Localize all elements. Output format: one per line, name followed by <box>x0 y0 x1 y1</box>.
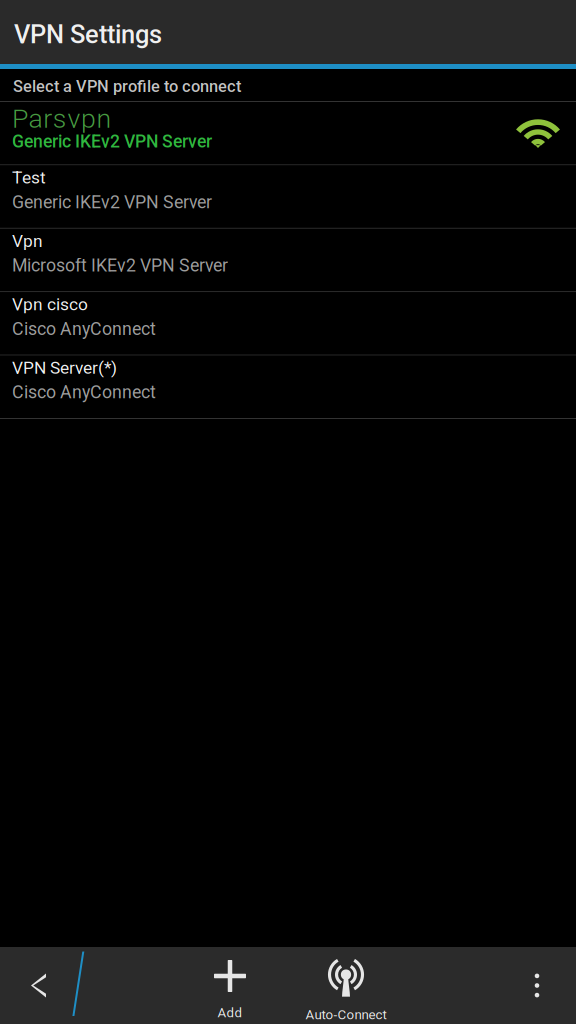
staticText: Add <box>217 1005 242 1021</box>
staticText: Auto-Connect <box>305 1007 386 1023</box>
staticText: Generic IKEv2 VPN Server <box>12 131 212 152</box>
staticText: VPN Settings <box>14 20 162 49</box>
staticText: Select a VPN profile to connect <box>13 77 241 96</box>
staticText: VPN Server(*) <box>12 358 117 378</box>
button[interactable]: VPN Server(*) <box>0 356 576 418</box>
button[interactable]: Vpn <box>0 229 576 291</box>
staticText: Cisco AnyConnect <box>12 318 156 339</box>
button[interactable]: Vpn cisco <box>0 292 576 355</box>
staticText: Parsvpn <box>12 103 118 134</box>
staticText: Cisco AnyConnect <box>12 382 156 403</box>
staticText: Generic IKEv2 VPN Server <box>12 192 212 212</box>
staticText: Vpn cisco <box>12 294 88 314</box>
staticText: Vpn <box>12 231 43 251</box>
button[interactable]: More options <box>498 947 576 1024</box>
button[interactable]: Parsvpn <box>0 102 576 164</box>
staticText: Test <box>12 167 46 188</box>
staticText: Microsoft IKEv2 VPN Server <box>12 255 228 276</box>
button[interactable]: Test <box>0 165 576 228</box>
button[interactable]: Back <box>0 947 70 1024</box>
button[interactable]: Auto-Connect <box>288 947 404 1024</box>
button[interactable]: Add <box>172 947 288 1024</box>
